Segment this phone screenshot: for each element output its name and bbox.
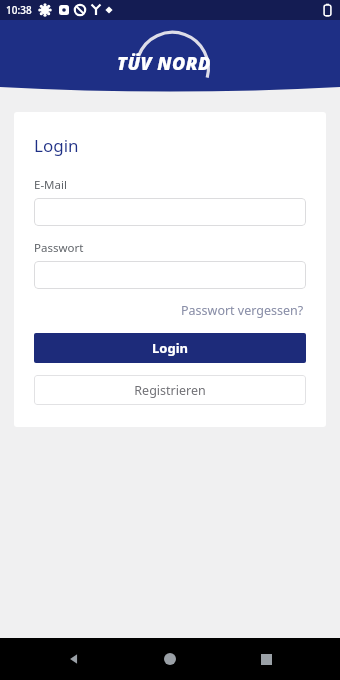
button[interactable]: Home bbox=[148, 638, 192, 680]
button[interactable] bbox=[34, 261, 306, 289]
button[interactable]: Login bbox=[34, 333, 306, 363]
staticText: Passwort bbox=[34, 240, 84, 256]
button[interactable]: Passwort vergessen? bbox=[179, 299, 306, 322]
staticText: TÜV NORD bbox=[117, 51, 211, 76]
staticText: 10:38 bbox=[6, 3, 32, 17]
staticText: Registrieren bbox=[134, 382, 206, 399]
button[interactable]: Recents bbox=[244, 638, 288, 680]
staticText: Passwort vergessen? bbox=[181, 302, 304, 319]
staticText: Login bbox=[152, 339, 188, 357]
staticText: Login bbox=[34, 134, 79, 157]
button[interactable] bbox=[34, 198, 306, 226]
button[interactable]: Registrieren bbox=[34, 375, 306, 405]
button[interactable]: Back bbox=[52, 638, 96, 680]
staticText: E-Mail bbox=[34, 177, 67, 193]
